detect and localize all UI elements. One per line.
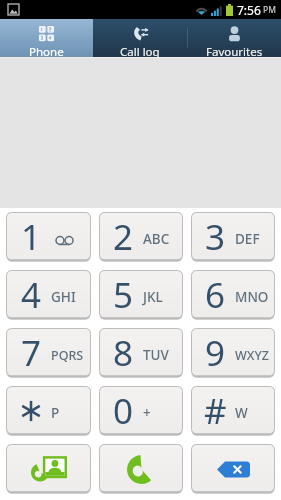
staticText: 4 [21,271,42,319]
staticText: + [143,404,151,422]
staticText: W [235,404,248,422]
button[interactable]: 3 [191,212,275,262]
staticText: P [51,404,60,422]
button[interactable]: 2 [99,212,183,262]
staticText: TUV [143,346,169,364]
staticText: 3 [205,213,226,261]
staticText: # [204,387,227,435]
button[interactable]: P [6,386,91,436]
staticText: WXYZ [235,347,269,364]
button[interactable]: Phone [0,19,93,57]
button[interactable]: 1 [6,212,91,262]
staticText: 6 [205,271,226,319]
staticText: GHI [51,288,76,306]
button[interactable]: Backspace [191,444,275,494]
staticText: DEF [235,230,260,248]
button[interactable]: 6 [191,270,275,320]
button[interactable]: # [191,386,275,436]
staticText: MNO [235,288,269,306]
staticText: 9 [205,329,226,377]
staticText: 7:56 [237,2,261,18]
button[interactable]: Call [99,444,183,494]
staticText: ABC [143,230,170,248]
staticText: JKL [143,288,163,306]
staticText: 8 [113,329,134,377]
button[interactable]: Call log [93,19,187,57]
staticText: PM [263,4,276,16]
staticText: 7 [21,329,42,377]
button[interactable]: 9 [191,328,275,378]
button[interactable]: 0 [99,386,183,436]
button[interactable]: 5 [99,270,183,320]
button[interactable]: Add to contacts [6,444,91,494]
button[interactable]: Favourites [187,19,281,57]
button[interactable]: 7 [6,328,91,378]
staticText: 2 [113,213,134,261]
staticText: 5 [113,271,134,319]
staticText: Phone [29,44,64,57]
staticText: Call log [120,44,160,57]
staticText: PQRS [51,347,84,364]
button[interactable]: 4 [6,270,91,320]
staticText: 0 [113,387,134,435]
button[interactable]: 8 [99,328,183,378]
staticText: Favourites [206,44,263,57]
staticText: 1 [21,213,42,261]
